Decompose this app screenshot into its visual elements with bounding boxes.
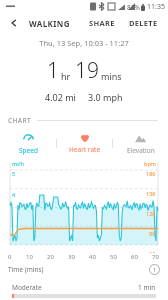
staticText: 19 [75, 56, 99, 85]
staticText: 186 [146, 170, 156, 177]
button[interactable]: Speed [0, 128, 56, 158]
staticText: 0 [8, 253, 12, 261]
button[interactable]: Heart rate [57, 128, 112, 158]
staticText: mi/h [12, 160, 25, 167]
staticText: 30 [68, 253, 75, 261]
button[interactable]: WALKING [29, 18, 70, 29]
button[interactable]: Back [6, 15, 22, 31]
staticText: Thu, 13 Sep, 10:03 - 11:27 [0, 38, 168, 48]
staticText: 66 [149, 250, 156, 253]
staticText: 3.0 mph [88, 91, 123, 103]
staticText: 5 [12, 170, 16, 177]
staticText: SHARE [89, 18, 115, 28]
staticText: 70 [152, 253, 159, 261]
staticText: Moderate [12, 283, 42, 292]
staticText: hr [61, 70, 71, 82]
staticText: 81% [127, 3, 140, 12]
button[interactable]: Info [149, 264, 160, 275]
button[interactable]: DELETE [125, 15, 162, 31]
staticText: bpm [144, 160, 156, 167]
staticText: 10 [26, 253, 33, 261]
button[interactable]: SHARE [85, 15, 119, 31]
staticText: Speed [19, 146, 38, 155]
staticText: 1 min [138, 283, 156, 292]
staticText: 4.02 mi [45, 91, 76, 103]
staticText: 1 [47, 56, 59, 85]
staticText: 50 [110, 253, 117, 261]
staticText: 40 [89, 253, 96, 261]
staticText: 156 [146, 190, 156, 197]
staticText: 4 [12, 191, 16, 198]
button[interactable]: Elevation [113, 128, 168, 158]
staticText: Elevation [127, 146, 155, 155]
staticText: mins [101, 70, 122, 82]
staticText: Time (mins) [8, 265, 44, 274]
staticText: 96 [149, 230, 156, 237]
staticText: 60 [131, 253, 138, 261]
staticText: DELETE [129, 18, 158, 28]
staticText: CHART [8, 116, 32, 125]
staticText: 11:35 [147, 2, 165, 12]
staticText: 1 [153, 266, 157, 273]
staticText: 20 [47, 253, 54, 261]
staticText: Heart rate [69, 145, 101, 154]
staticText: 126 [146, 210, 156, 217]
